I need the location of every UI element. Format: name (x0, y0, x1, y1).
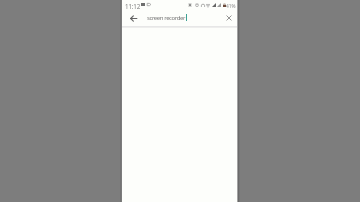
button[interactable]: Clear (222, 10, 236, 25)
button[interactable]: screen recorder (143, 11, 219, 26)
staticText: 41% (226, 3, 236, 10)
button[interactable]: Back (126, 11, 140, 26)
staticText: 11:12 (125, 2, 141, 10)
staticText: screen recorder (147, 14, 186, 22)
